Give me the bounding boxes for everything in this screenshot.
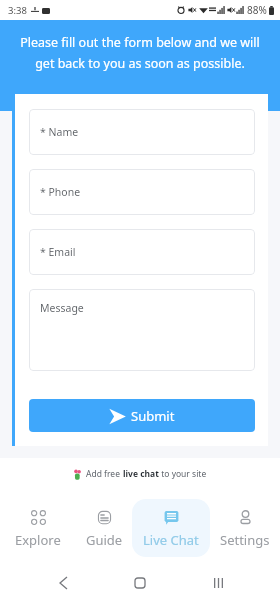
button[interactable]: Guide — [76, 499, 132, 557]
staticText: live chat — [123, 468, 159, 480]
staticText: Message — [40, 301, 84, 315]
button[interactable]: Live Chat — [132, 499, 210, 557]
staticText: Please fill out the form below and we wi… — [0, 34, 280, 71]
button[interactable]: Submit — [29, 399, 255, 432]
staticText: * Phone — [40, 185, 81, 199]
button[interactable]: * Phone — [29, 169, 255, 215]
staticText: Live Chat — [143, 531, 199, 549]
button[interactable]: * Email — [29, 229, 255, 275]
staticText: 88% — [247, 3, 267, 17]
button[interactable]: * Name — [29, 109, 255, 155]
staticText: Submit — [131, 407, 175, 425]
staticText: 3:38 — [8, 4, 27, 17]
button[interactable]: Explore — [0, 499, 76, 557]
button[interactable]: Settings — [210, 499, 280, 557]
staticText: Guide — [86, 531, 123, 549]
staticText: Add free — [86, 468, 123, 480]
button[interactable]: Back — [48, 568, 78, 598]
staticText: * Name — [40, 125, 79, 139]
staticText: to your site — [159, 468, 207, 480]
button[interactable]: Home — [125, 568, 155, 598]
staticText: Explore — [15, 531, 61, 549]
button[interactable]: Message — [29, 289, 255, 371]
staticText: * Email — [40, 245, 76, 259]
button[interactable]: Recent apps — [203, 568, 233, 598]
staticText: Settings — [220, 531, 270, 549]
